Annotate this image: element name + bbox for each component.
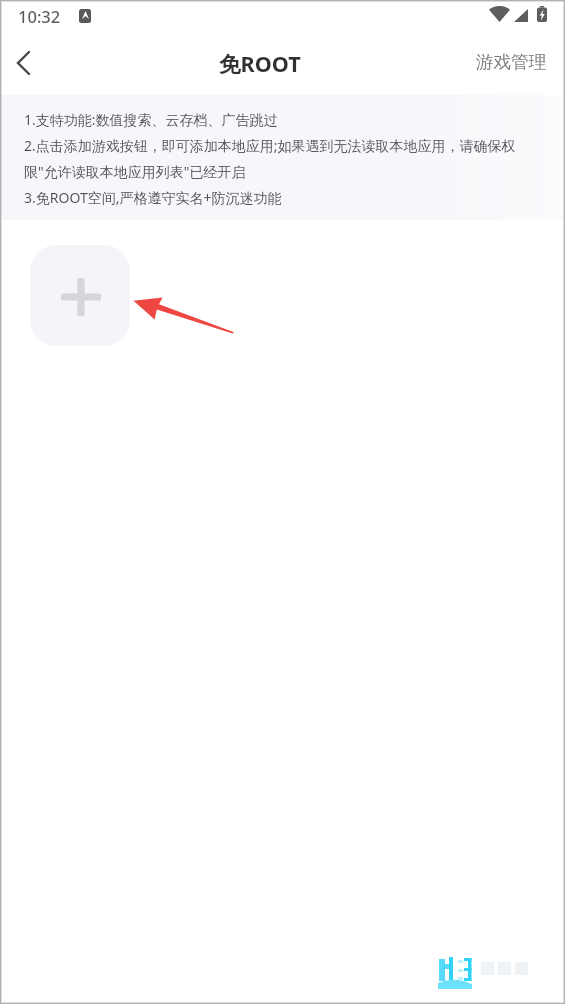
staticText: 免ROOT (219, 49, 301, 79)
staticText: 游戏管理 (476, 51, 547, 73)
button[interactable]: Add game (30, 245, 130, 346)
button[interactable]: Back (0, 32, 46, 91)
button[interactable]: 游戏管理 (462, 32, 565, 91)
staticText: 10:32 (18, 5, 61, 27)
staticText: 限"允许读取本地应用列表"已经开启 (24, 162, 246, 181)
staticText: 3.免ROOT空间,严格遵守实名+防沉迷功能 (24, 188, 282, 207)
staticText: 1.支特功能:数值搜索、云存档、广告跳过 (24, 110, 278, 129)
staticText: 2.点击添加游戏按钮，即可添加本地应用;如果遇到无法读取本地应用，请确保权 (24, 136, 516, 155)
